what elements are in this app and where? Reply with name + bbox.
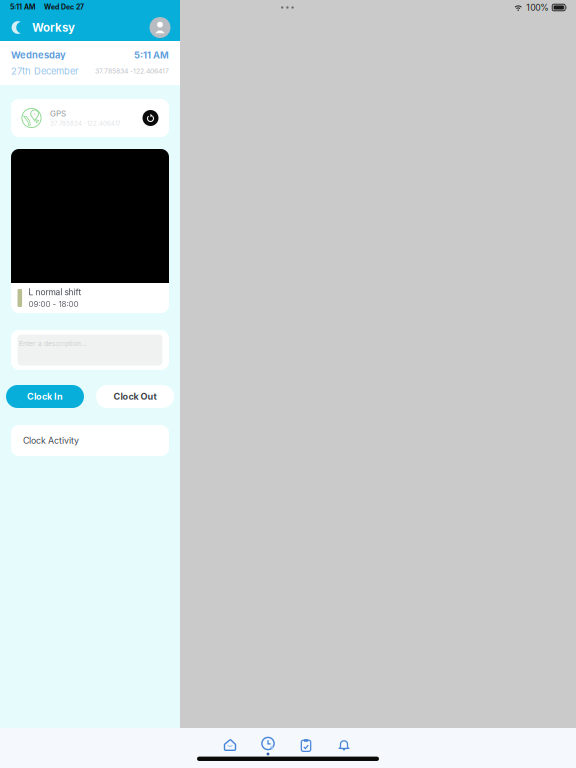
staticText: Wed Dec 27 <box>44 3 84 11</box>
staticText: 5:11 AM <box>134 49 169 61</box>
staticText: Enter a description... <box>19 339 87 348</box>
button[interactable]: Enter a description... <box>11 330 169 370</box>
button[interactable]: Clock In <box>6 385 84 408</box>
staticText: Clock In <box>27 391 63 402</box>
staticText: 100% <box>526 2 549 13</box>
button[interactable]: Timesheet <box>249 734 287 756</box>
staticText: L normal shift <box>29 287 82 297</box>
staticText: Clock Out <box>113 391 156 402</box>
button[interactable]: Clock Activity <box>11 425 169 456</box>
staticText: 27th December <box>11 65 79 77</box>
staticText: GPS <box>50 109 66 118</box>
button[interactable]: Clock Out <box>96 385 174 408</box>
staticText: 37.785834 -122.406417 <box>95 67 169 75</box>
staticText: Clock Activity <box>23 435 79 446</box>
staticText: 5:11 AM <box>10 3 35 11</box>
button[interactable]: Home <box>211 734 249 756</box>
staticText: 37.785834 -122.406417 <box>50 120 120 127</box>
staticText: Worksy <box>32 21 75 34</box>
button[interactable]: Profile <box>149 16 171 38</box>
button[interactable]: Refresh GPS location <box>142 109 159 126</box>
staticText: Wednesday <box>11 49 66 61</box>
staticText: 09:00 - 18:00 <box>29 299 79 309</box>
button[interactable]: Notifications <box>325 734 363 756</box>
button[interactable]: Tasks <box>287 734 325 756</box>
